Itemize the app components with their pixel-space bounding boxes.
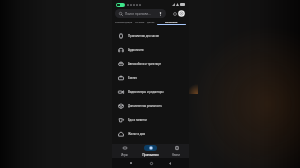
button[interactable]: Приложения для часов: [112, 29, 189, 43]
staticText: Категории: [165, 20, 178, 23]
staticText: Приложения для часов: [128, 34, 159, 38]
staticText: Бизнес: [128, 76, 138, 80]
button[interactable]: Поиск приложе…: [115, 9, 166, 18]
staticText: Дополненная реальность: [128, 104, 162, 108]
button[interactable]: Рекомендации: [114, 20, 134, 23]
button[interactable]: Back: [167, 160, 173, 166]
button[interactable]: Еда и напитки: [112, 113, 189, 127]
button[interactable]: Жилье и дом: [112, 127, 189, 141]
button[interactable]: Notifications: [172, 11, 177, 16]
button[interactable]: Книги: [163, 144, 189, 158]
staticText: Автомобили и транспорт: [128, 62, 162, 66]
button[interactable]: Recents: [128, 160, 134, 166]
button[interactable]: Home: [148, 160, 154, 166]
button[interactable]: Бизнес: [112, 71, 189, 85]
button[interactable]: Детям: [146, 20, 156, 23]
staticText: Еда и напитки: [128, 118, 147, 122]
button[interactable]: Приложения: [137, 144, 163, 158]
button[interactable]: Лучшие: [134, 20, 146, 23]
staticText: Аудиокниги: [128, 48, 144, 52]
button[interactable]: Account: [178, 10, 185, 17]
button[interactable]: Дополненная реальность: [112, 99, 189, 113]
staticText: Поиск приложе…: [125, 12, 151, 16]
button[interactable]: Аудиокниги: [112, 43, 189, 57]
staticText: Жилье и дом: [128, 132, 146, 136]
staticText: Рекомендации: [115, 20, 133, 23]
staticText: Приложения: [142, 153, 159, 157]
staticText: Игры: [121, 153, 128, 157]
staticText: Книги: [172, 153, 180, 157]
button[interactable]: Видеоплееры и редакторы: [112, 85, 189, 99]
button[interactable]: Категории: [156, 20, 187, 25]
button[interactable]: Игры: [112, 144, 137, 158]
staticText: Детям: [147, 20, 155, 23]
staticText: Лучшие: [135, 20, 145, 23]
staticText: Видеоплееры и редакторы: [128, 90, 164, 94]
button[interactable]: Автомобили и транспорт: [112, 57, 189, 71]
